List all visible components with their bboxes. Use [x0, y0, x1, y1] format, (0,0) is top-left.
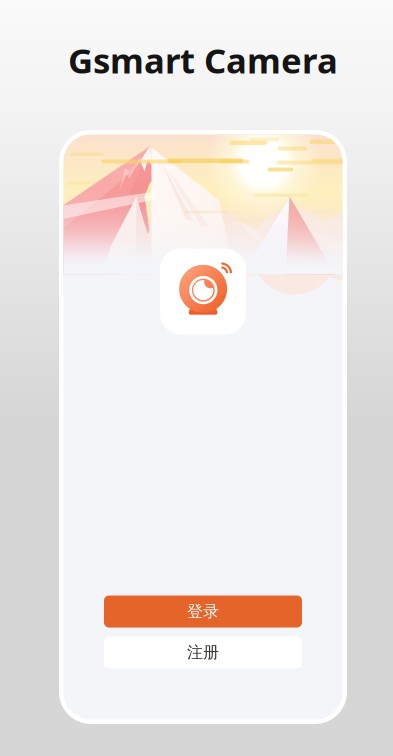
button[interactable]: 登录	[104, 595, 302, 627]
staticText: 登录	[187, 602, 219, 621]
staticText: Gsmart Camera	[68, 37, 338, 83]
staticText: 注册	[187, 643, 219, 662]
button[interactable]: 注册	[104, 636, 302, 668]
